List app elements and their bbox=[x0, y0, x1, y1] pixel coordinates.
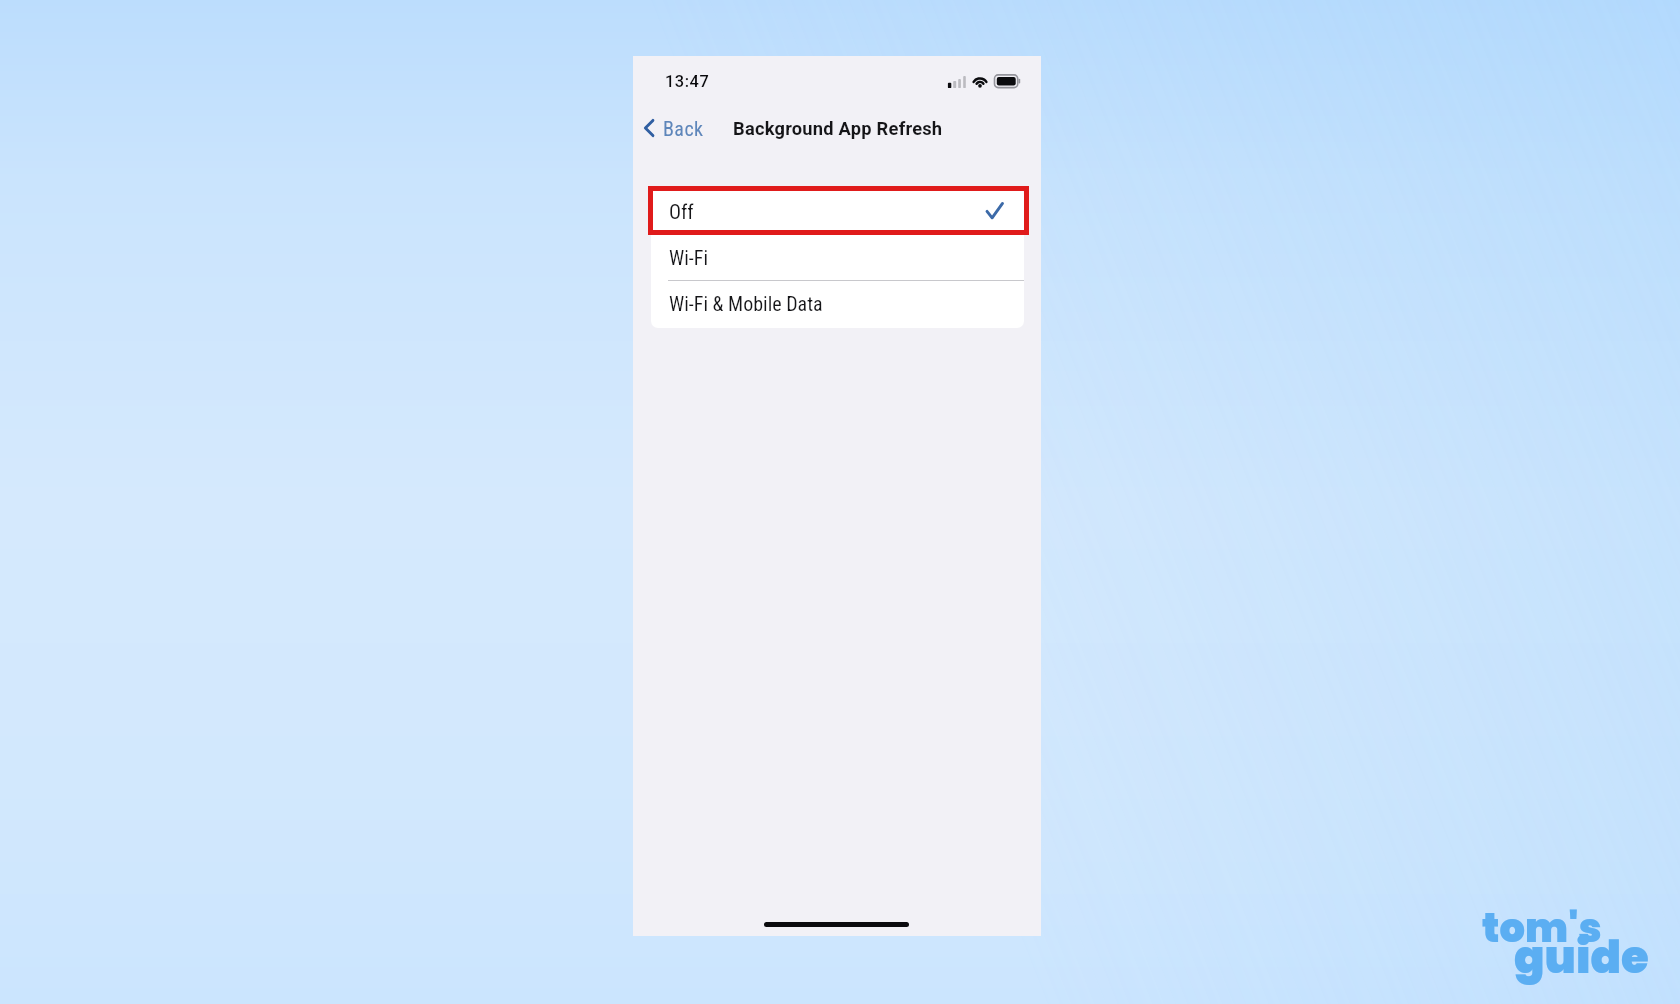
staticText: Back bbox=[663, 117, 704, 140]
other: Selected bbox=[986, 202, 1003, 220]
staticText: 13:47 bbox=[665, 72, 710, 91]
button[interactable]: Wi-Fi & Mobile Data bbox=[651, 280, 1024, 326]
staticText: Wi-Fi bbox=[669, 246, 708, 269]
staticText: Background App Refresh bbox=[733, 118, 943, 139]
staticText: guide bbox=[1514, 926, 1649, 989]
button[interactable]: Wi-Fi bbox=[651, 234, 1024, 280]
staticText: Off bbox=[669, 200, 694, 223]
button[interactable]: Back bbox=[642, 111, 704, 145]
other: Back bbox=[642, 118, 656, 138]
staticText: tom's bbox=[1482, 900, 1602, 956]
button[interactable]: Off bbox=[651, 188, 1024, 234]
staticText: Wi-Fi & Mobile Data bbox=[669, 292, 823, 315]
